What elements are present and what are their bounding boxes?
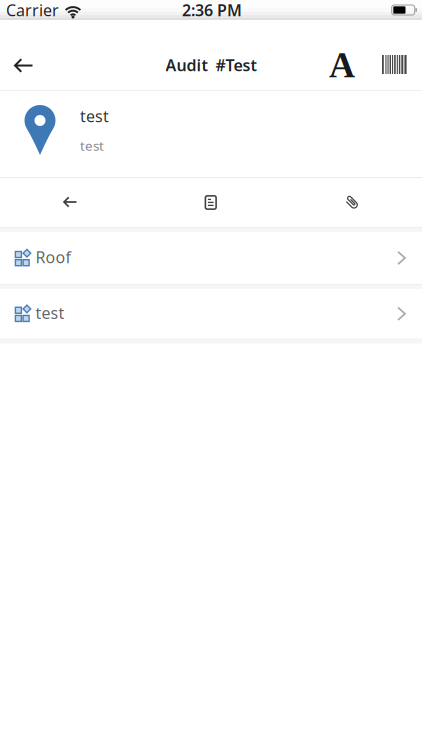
button[interactable]: Attachments	[281, 178, 422, 227]
button[interactable]: Text settings	[321, 21, 355, 89]
button[interactable]: Notes	[140, 178, 281, 227]
button[interactable]: Back	[0, 20, 42, 90]
staticText: 2:36 PM	[182, 0, 242, 21]
staticText: test	[80, 105, 109, 127]
button[interactable]: Roof	[0, 232, 422, 284]
button[interactable]: test	[0, 289, 422, 338]
staticText: test	[35, 302, 64, 323]
staticText: Roof	[35, 246, 71, 268]
button[interactable]: Scan barcode	[355, 20, 422, 90]
staticText: A	[329, 45, 355, 85]
staticText: Audit #Test	[165, 54, 256, 76]
staticText: Carrier	[6, 0, 59, 21]
button[interactable]: Previous	[0, 178, 140, 227]
staticText: test	[80, 137, 104, 154]
